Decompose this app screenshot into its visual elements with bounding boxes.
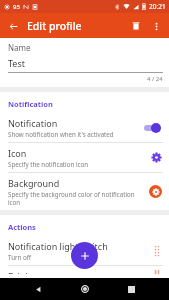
staticText: Actions [8, 222, 36, 232]
button[interactable]: Reorder [152, 244, 162, 258]
button[interactable]: Recent apps [122, 280, 140, 298]
button[interactable]: More options [146, 16, 166, 36]
button[interactable]: Name [0, 38, 169, 87]
button[interactable]: Reorder [152, 270, 162, 274]
button[interactable]: Icon [0, 143, 169, 172]
button[interactable]: Background [0, 173, 169, 210]
staticText: Show notification when it's activated [8, 130, 114, 138]
staticText: Brightness [8, 270, 54, 274]
other: Settings [152, 188, 160, 196]
button[interactable]: Add [71, 242, 98, 269]
staticText: 4 / 24 [147, 75, 163, 83]
staticText: Name [8, 42, 31, 53]
staticText: Specify the background color of notifica… [8, 190, 145, 206]
button[interactable]: Brightness [0, 266, 169, 278]
staticText: Notification [8, 117, 58, 129]
staticText: Notification light switch [8, 240, 108, 252]
staticText: Test [8, 57, 26, 69]
staticText: 95 [13, 3, 20, 11]
staticText: Edit profile [27, 19, 82, 33]
button[interactable]: Back [29, 280, 47, 298]
other: Settings [151, 152, 162, 163]
staticText: Background [8, 177, 60, 189]
button[interactable]: Notification light switch [0, 236, 169, 265]
staticText: Notification [8, 99, 53, 109]
button[interactable]: Notification toggle [142, 122, 162, 134]
button[interactable]: Notification [0, 113, 169, 142]
staticText: Turn off [8, 253, 31, 261]
button[interactable]: Delete [126, 16, 146, 36]
staticText: 20:21 [149, 2, 166, 11]
button[interactable]: Home [76, 280, 94, 298]
button[interactable]: Back [4, 17, 22, 35]
staticText: Specify the notification icon [8, 160, 89, 168]
staticText: Icon [8, 147, 27, 159]
